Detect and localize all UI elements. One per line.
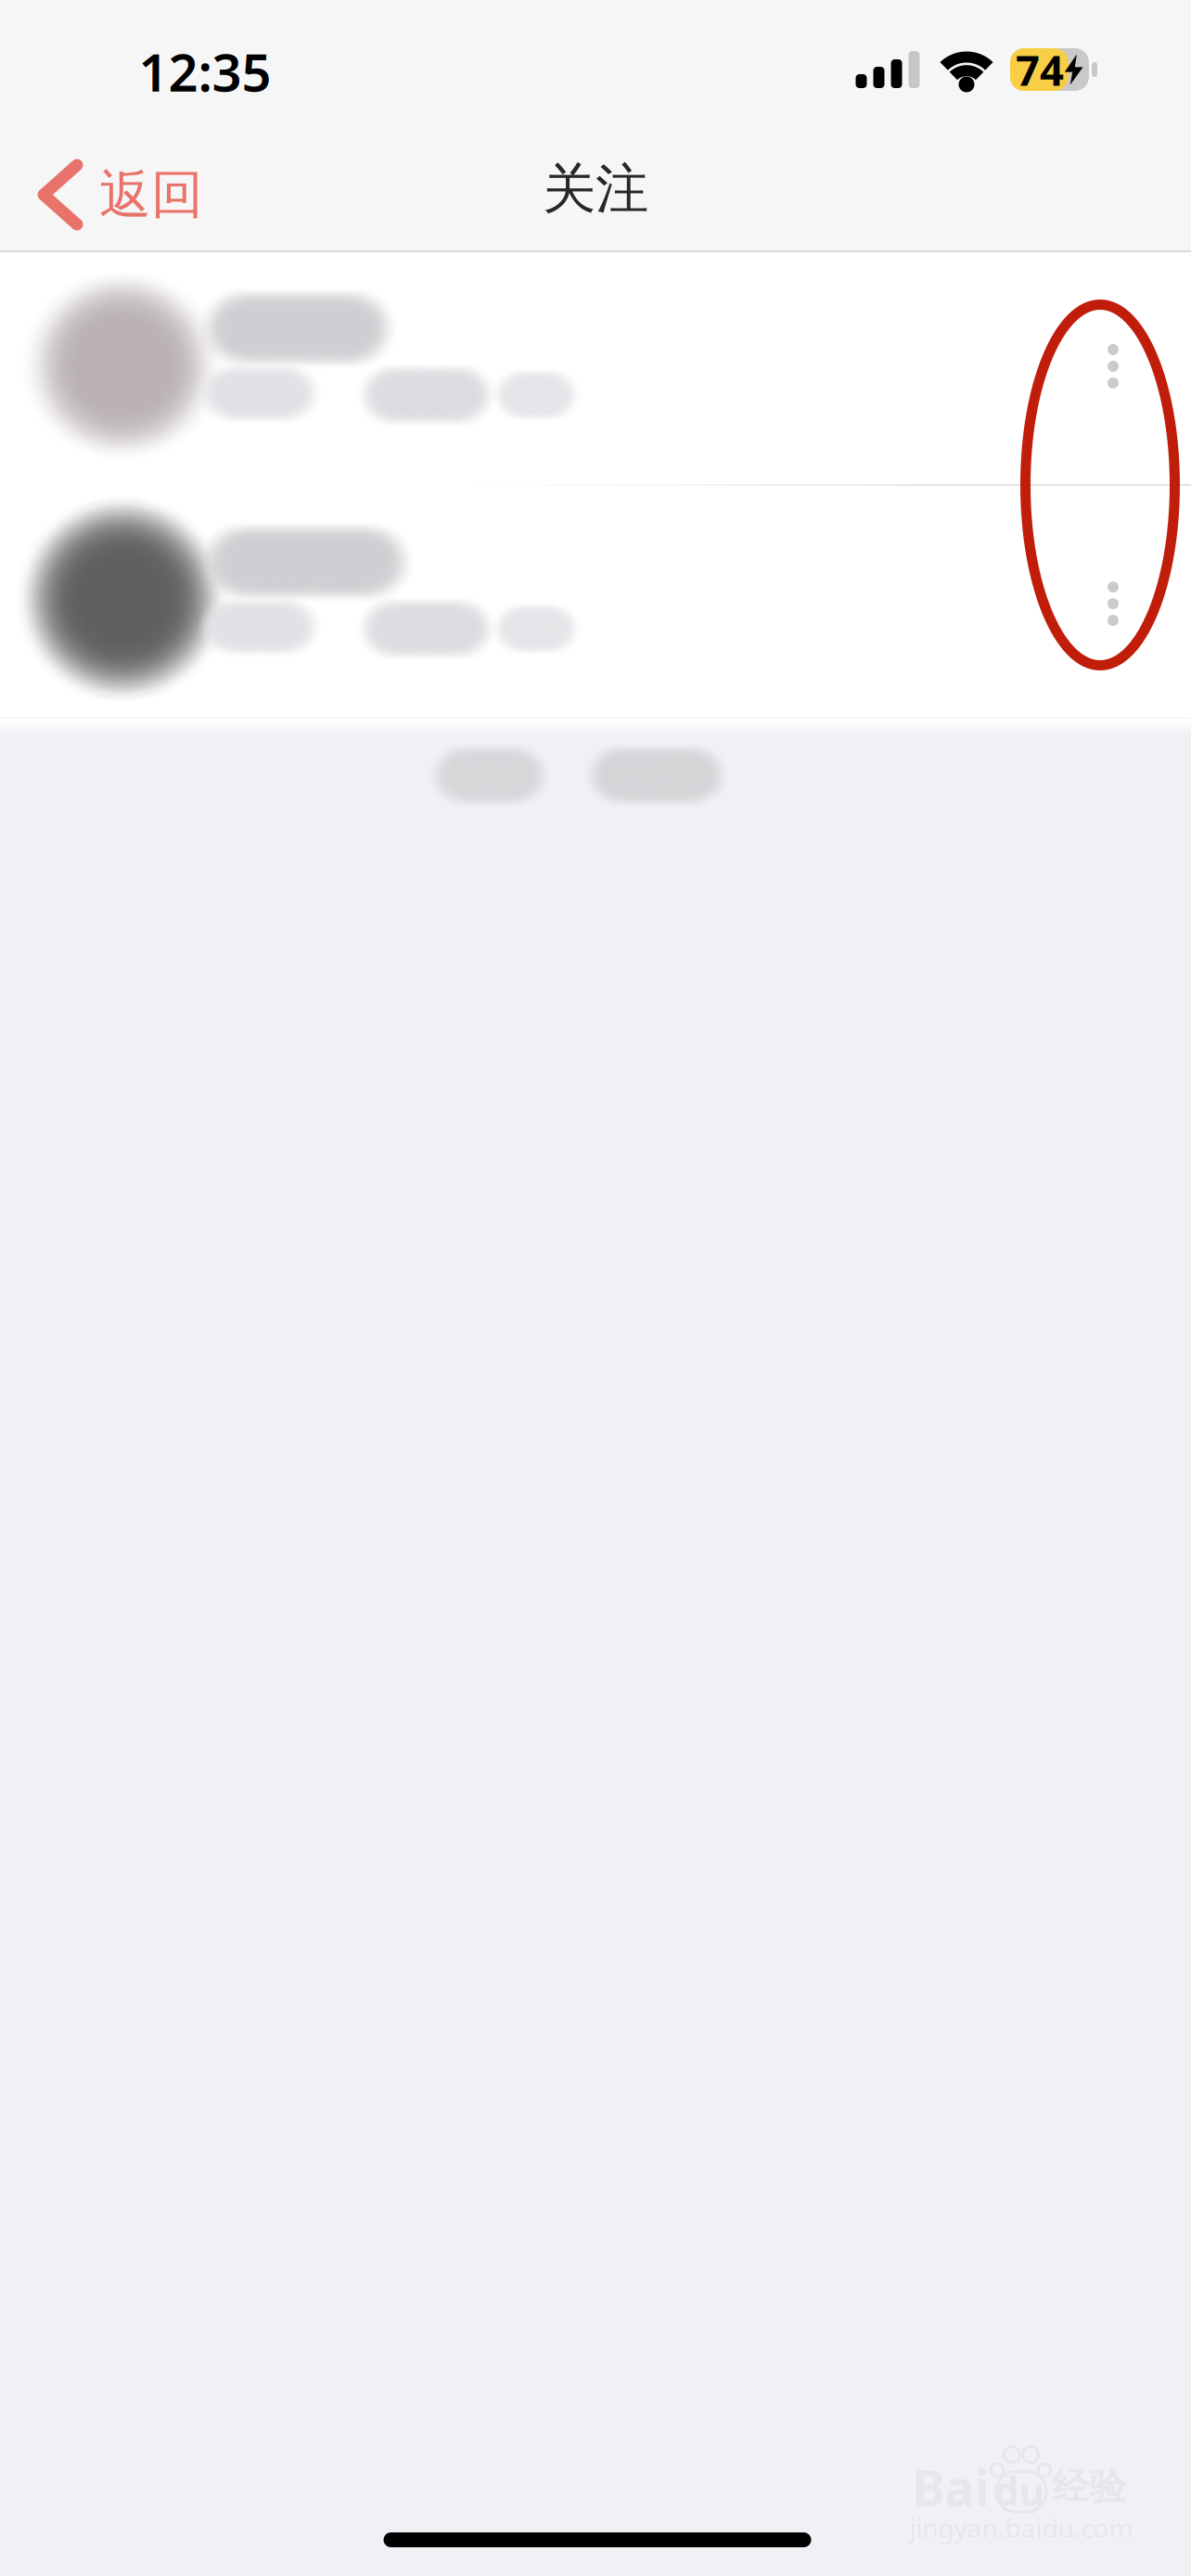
button[interactable]: 返回 [6,139,231,251]
staticText: 关注 [543,157,648,222]
button[interactable]: 更多操作 [1057,529,1169,678]
staticText: du [994,2464,1045,2517]
staticText: jingyan.baidu.com [909,2511,1133,2545]
button[interactable]: 更多操作 [1057,292,1169,440]
staticText: 12:35 [139,37,271,106]
staticText: 返回 [99,163,203,227]
staticText: Bai [912,2454,989,2520]
staticText: 经验 [1052,2464,1126,2510]
staticText: 74 [1016,42,1064,97]
